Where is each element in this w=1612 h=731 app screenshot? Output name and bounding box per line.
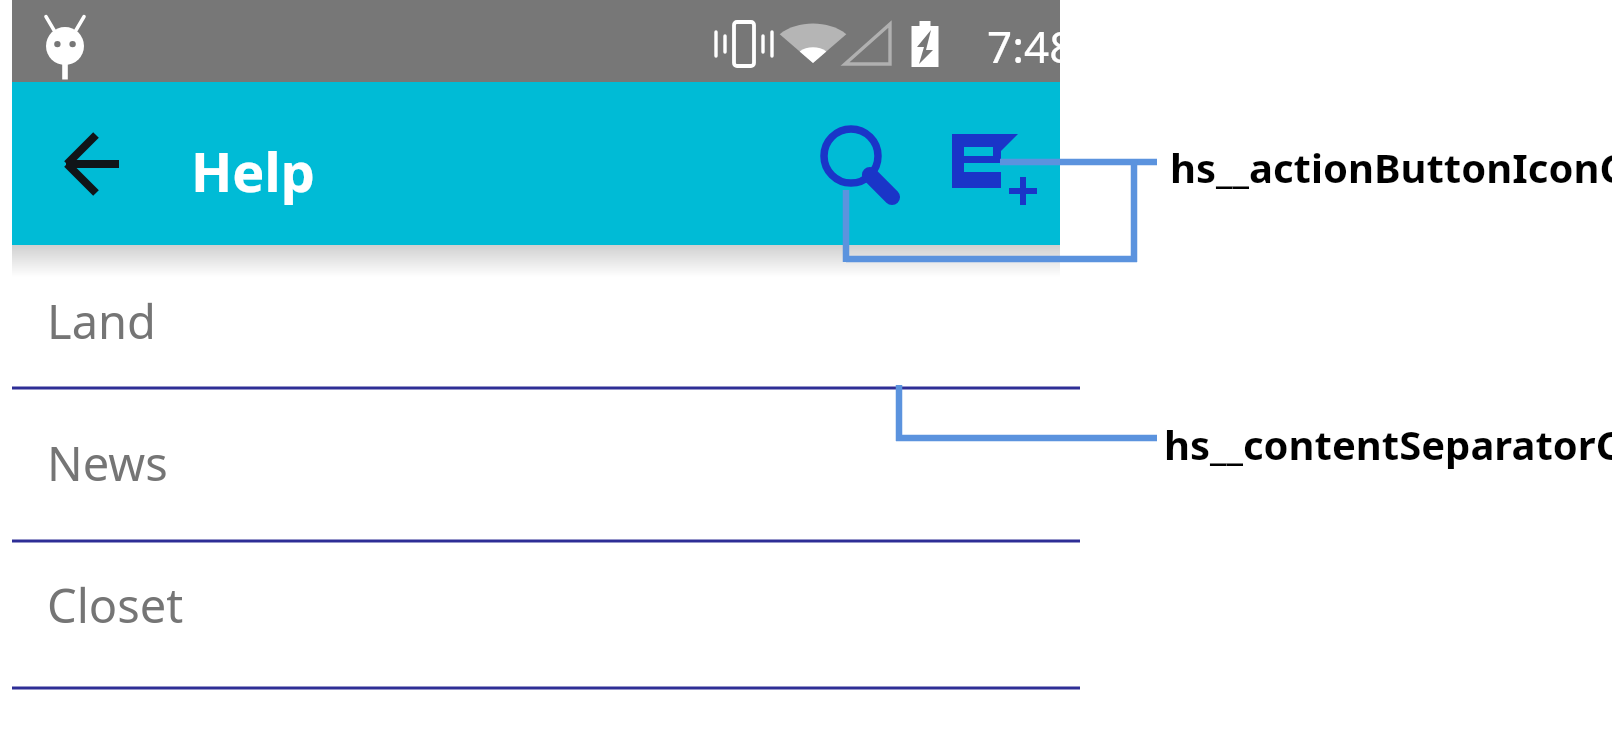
staticText: hs__actionButtonIconColor [1170,140,1612,194]
staticText: 7:48 [987,16,1075,76]
staticText: Help [191,134,315,208]
button[interactable]: Search [802,106,902,210]
staticText: Closet [47,573,184,637]
staticText: Land [47,289,156,353]
staticText: News [47,431,168,495]
button[interactable] [12,543,1080,688]
staticText: hs__contentSeparatorColor [1164,417,1612,471]
button[interactable]: Back [42,112,147,216]
button[interactable] [12,390,1080,541]
button[interactable]: New message [934,108,1050,212]
button[interactable] [12,250,1080,388]
